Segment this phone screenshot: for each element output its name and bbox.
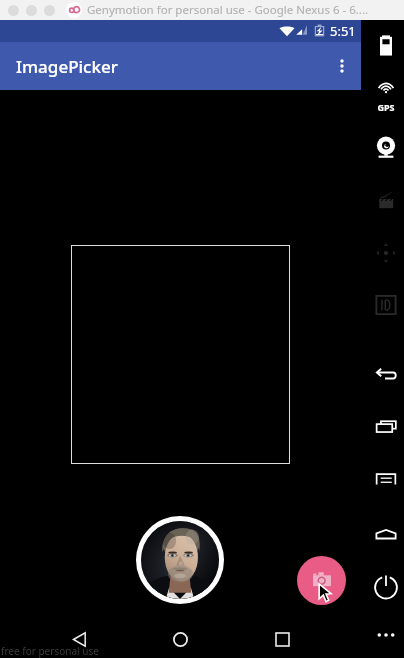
button[interactable]: Home <box>368 515 404 555</box>
button[interactable]: Window control <box>26 5 37 16</box>
button[interactable]: GPS <box>368 75 404 115</box>
button[interactable]: Power <box>368 569 404 609</box>
button[interactable]: Record video <box>368 180 404 220</box>
button[interactable]: More <box>368 615 404 655</box>
button[interactable]: Identifiers <box>368 285 404 325</box>
button[interactable]: Profile photo <box>136 516 224 604</box>
staticText: GPS <box>368 101 404 113</box>
button[interactable]: Recent apps <box>368 407 404 447</box>
staticText: ImagePicker <box>16 55 118 78</box>
button[interactable]: Window control <box>44 5 55 16</box>
button[interactable]: Battery <box>368 25 404 65</box>
button[interactable]: Take photo <box>297 556 346 605</box>
button[interactable]: More options <box>320 42 364 90</box>
button[interactable]: Recent apps <box>258 621 306 658</box>
button[interactable]: Window control <box>8 5 19 16</box>
staticText: free for personal use <box>1 644 99 658</box>
staticText: 5:51 <box>330 22 356 40</box>
staticText: Genymotion for personal use - Google Nex… <box>87 2 369 18</box>
button[interactable]: Camera <box>368 128 404 168</box>
button[interactable]: Menu <box>368 461 404 501</box>
button[interactable]: Home <box>156 621 204 658</box>
button[interactable]: Back <box>368 353 404 393</box>
button[interactable]: Back <box>55 621 103 658</box>
button[interactable]: Rotation <box>368 233 404 273</box>
